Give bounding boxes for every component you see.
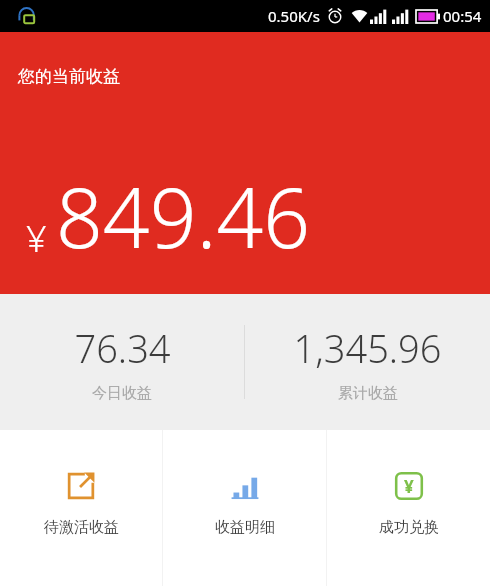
staticText: 849.46 [56,160,311,272]
staticText: ¥ [26,214,47,263]
button[interactable]: 成功兑换 [327,430,490,586]
staticText: 0.50K/s [268,6,320,26]
staticText: 00:54 [443,6,482,26]
staticText: 收益明细 [215,518,275,537]
button[interactable]: 待激活收益 [0,430,162,586]
staticText: 待激活收益 [44,518,119,537]
staticText: 76.34 [74,322,171,374]
staticText: 1,345.96 [293,322,442,374]
button[interactable]: 收益明细 [163,430,326,586]
button[interactable]: 1,345.96 [245,294,490,430]
staticText: 今日收益 [92,384,152,403]
staticText: ¥ [404,475,414,498]
staticText: 成功兑换 [379,518,439,537]
button[interactable]: 76.34 [0,294,244,430]
staticText: 累计收益 [338,384,398,403]
staticText: 您的当前收益 [18,66,120,87]
